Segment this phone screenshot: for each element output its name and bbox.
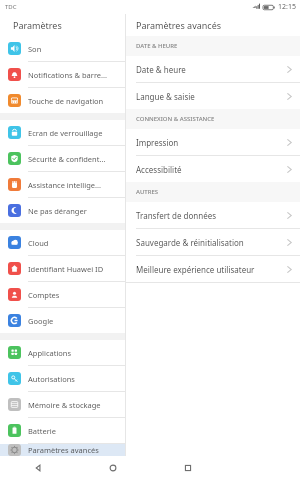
staticText: Comptes [28, 290, 60, 300]
button[interactable]: Sécurité & confident... [0, 146, 125, 171]
button[interactable]: Meilleure expérience utilisateur [126, 256, 300, 282]
staticText: Langue & saisie [136, 91, 287, 102]
staticText: Autorisations [28, 374, 75, 384]
button[interactable]: Son [0, 36, 125, 61]
staticText: 12:15 [278, 2, 296, 12]
button[interactable]: Batterie [0, 418, 125, 443]
button[interactable]: Assistance intellige... [0, 172, 125, 197]
button[interactable]: Home [75, 456, 150, 480]
staticText: Batterie [28, 426, 56, 436]
button[interactable]: Back [0, 456, 75, 480]
staticText: Identifiant Huawei ID [28, 264, 104, 274]
staticText: AUTRES [136, 188, 159, 196]
staticText: Paramètres avancés [28, 445, 99, 455]
staticText: Mémoire & stockage [28, 400, 101, 410]
staticText: Paramètres [13, 19, 62, 31]
staticText: Transfert de données [136, 210, 287, 221]
button[interactable]: Identifiant Huawei ID [0, 256, 125, 281]
staticText: Ne pas déranger [28, 206, 87, 216]
staticText: Cloud [28, 238, 49, 248]
button[interactable]: Langue & saisie [126, 83, 300, 109]
staticText: Meilleure expérience utilisateur [136, 264, 287, 275]
staticText: Notifications & barre... [28, 70, 108, 80]
button[interactable]: Touche de navigation [0, 88, 125, 113]
staticText: Impression [136, 137, 287, 148]
staticText: Applications [28, 348, 72, 358]
button[interactable]: Cloud [0, 230, 125, 255]
button[interactable]: Applications [0, 340, 125, 365]
button[interactable]: Recent apps [150, 456, 225, 480]
button[interactable]: Notifications & barre... [0, 62, 125, 87]
button[interactable]: Mémoire & stockage [0, 392, 125, 417]
button[interactable]: Ecran de verrouillage [0, 120, 125, 145]
staticText: Date & heure [136, 64, 287, 75]
staticText: Sécurité & confident... [28, 154, 106, 164]
button[interactable]: Comptes [0, 282, 125, 307]
staticText: Ecran de verrouillage [28, 128, 103, 138]
staticText: Accessibilité [136, 164, 287, 175]
button[interactable]: Ne pas déranger [0, 198, 125, 223]
staticText: DATE & HEURE [136, 42, 178, 50]
button[interactable]: Impression [126, 129, 300, 155]
staticText: CONNEXION & ASSISTANCE [136, 115, 215, 123]
button[interactable]: Transfert de données [126, 202, 300, 228]
staticText: TDC [5, 3, 17, 11]
staticText: Touche de navigation [28, 96, 104, 106]
button[interactable]: Google [0, 308, 125, 333]
button[interactable]: Sauvegarde & réinitialisation [126, 229, 300, 255]
button[interactable]: Accessibilité [126, 156, 300, 182]
button[interactable]: Paramètres avancés [0, 444, 125, 456]
staticText: Sauvegarde & réinitialisation [136, 237, 287, 248]
button[interactable]: Date & heure [126, 56, 300, 82]
button[interactable]: Autorisations [0, 366, 125, 391]
staticText: Paramètres avancés [136, 19, 222, 31]
staticText: Assistance intellige... [28, 180, 102, 190]
staticText: Son [28, 44, 42, 54]
staticText: Google [28, 316, 54, 326]
